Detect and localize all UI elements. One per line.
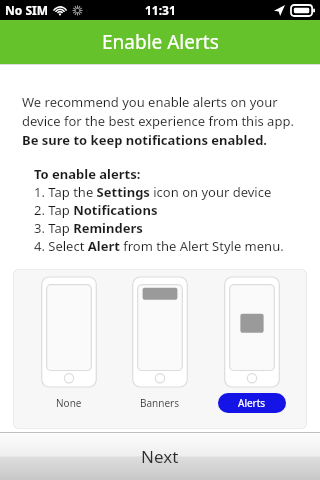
staticText: 4. Select Alert from the Alert Style men… (34, 237, 284, 255)
staticText: We recommend you enable alerts on your d… (22, 93, 302, 149)
staticText: Enable Alerts (102, 29, 219, 55)
staticText: Next (141, 445, 179, 468)
staticText: 2. Tap Notifications (34, 201, 158, 219)
staticText: None (56, 396, 82, 410)
staticText: 1. Tap the Settings icon on your device (34, 183, 272, 201)
button[interactable]: Next (0, 433, 320, 480)
button[interactable]: Banners (126, 393, 194, 413)
staticText: Alerts (238, 396, 266, 410)
button[interactable]: Alerts (218, 393, 286, 413)
staticText: 3. Tap Reminders (34, 219, 143, 237)
staticText: To enable alerts: (34, 165, 141, 183)
staticText: Banners (140, 396, 180, 410)
button[interactable]: None (35, 393, 103, 413)
staticText: 11:31 (145, 2, 176, 18)
staticText: No SIM (5, 2, 48, 18)
